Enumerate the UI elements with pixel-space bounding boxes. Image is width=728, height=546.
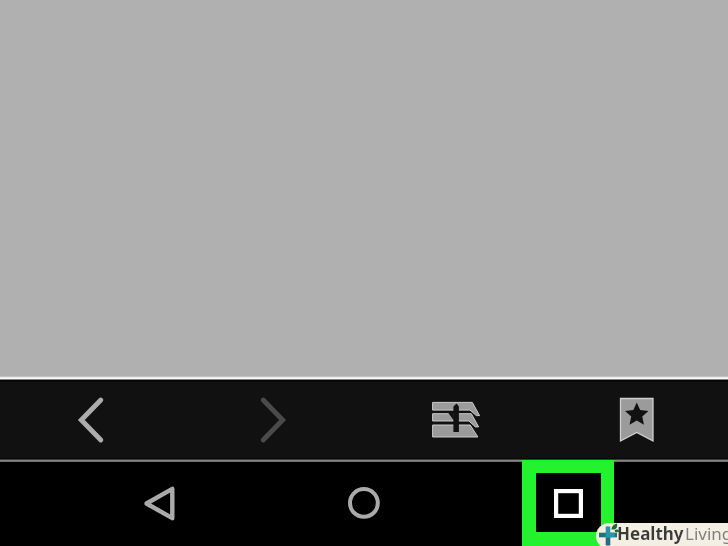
button[interactable]: Bookmark [616,394,658,446]
staticText: Healthy [617,523,684,545]
button[interactable]: Back [56,392,106,448]
staticText: Living [685,523,728,545]
button[interactable]: Navigate back [134,478,186,528]
button[interactable]: Forward [239,392,289,448]
button[interactable]: Recent apps [522,460,614,546]
button[interactable]: Add to reading list [428,394,484,446]
button[interactable]: Home [338,478,390,528]
